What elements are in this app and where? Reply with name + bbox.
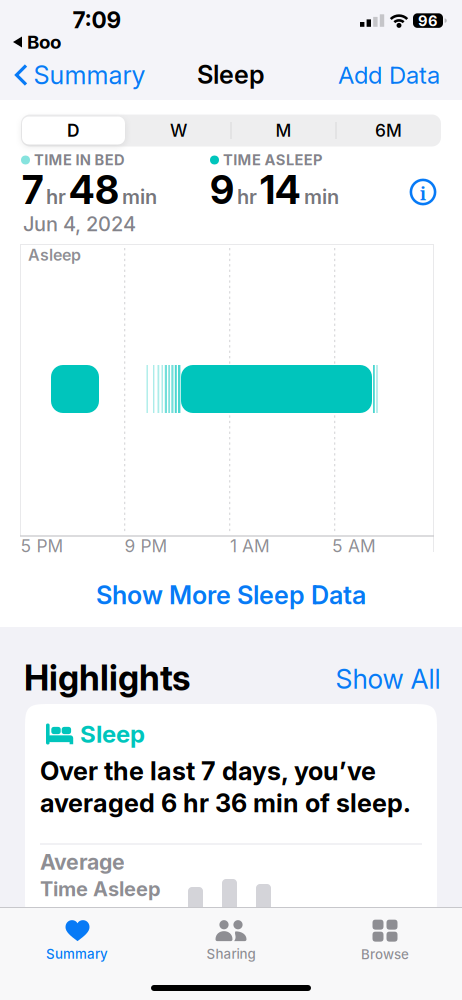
staticText: M	[275, 120, 291, 141]
staticText: 5 AM	[332, 536, 376, 556]
staticText: Time Asleep	[40, 877, 161, 901]
staticText: Sleep	[197, 60, 265, 89]
button[interactable]: D	[22, 116, 125, 144]
staticText: Jun 4, 2024	[23, 212, 136, 236]
staticText: 1 AM	[230, 536, 270, 556]
staticText: 14	[260, 167, 301, 213]
staticText: TIME IN BED	[34, 151, 125, 169]
staticText: 48	[69, 167, 119, 213]
staticText: Browse	[361, 947, 409, 962]
button[interactable]: Summary	[17, 915, 137, 967]
button[interactable]: 6M	[340, 115, 436, 145]
button[interactable]: W	[130, 115, 226, 145]
button[interactable]: Sleep	[25, 704, 437, 924]
staticText: Show More Sleep Data	[96, 580, 366, 610]
staticText: 6M	[375, 120, 402, 141]
staticText: 9	[210, 167, 234, 213]
staticText: D	[67, 120, 80, 141]
button[interactable]: Show More Sleep Data	[96, 580, 366, 610]
staticText: Asleep	[28, 246, 81, 264]
staticText: Summary	[33, 60, 145, 90]
staticText: Boo	[27, 31, 61, 53]
staticText: 9 PM	[124, 536, 167, 556]
staticText: 96	[418, 12, 438, 29]
staticText: hr	[237, 185, 257, 209]
button[interactable]: Sharing	[171, 915, 291, 967]
staticText: Show All	[335, 663, 440, 695]
button[interactable]: About Sleep Data	[409, 178, 436, 205]
staticText: Average	[40, 849, 125, 875]
staticText: min	[304, 185, 339, 209]
staticText: Sharing	[206, 946, 255, 962]
button[interactable]: Add Data	[338, 61, 440, 89]
button[interactable]: M	[235, 115, 331, 145]
staticText: min	[122, 185, 157, 209]
staticText: Over the last 7 days, you’ve	[40, 756, 376, 786]
staticText: TIME ASLEEP	[223, 151, 323, 169]
staticText: Highlights	[24, 658, 190, 698]
staticText: hr	[46, 185, 66, 209]
staticText: W	[170, 120, 187, 141]
staticText: 7	[22, 167, 43, 213]
staticText: Add Data	[338, 61, 440, 89]
button[interactable]: Back to Summary	[14, 60, 145, 90]
staticText: i	[420, 182, 426, 205]
button[interactable]: Browse	[325, 915, 445, 967]
staticText: averaged 6 hr 36 min of sleep.	[40, 788, 411, 818]
staticText: Sleep	[80, 720, 145, 748]
staticText: Summary	[46, 946, 108, 962]
staticText: 7:09	[72, 7, 121, 33]
staticText: 5 PM	[20, 536, 63, 556]
button[interactable]: Show All	[335, 663, 440, 695]
